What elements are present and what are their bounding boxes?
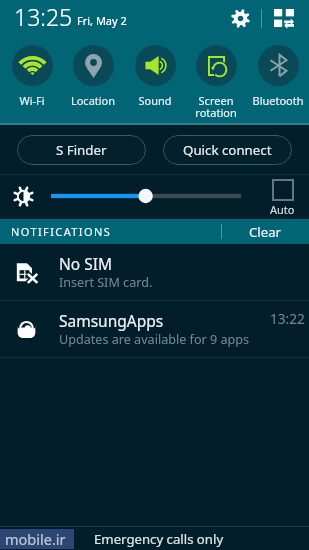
- button[interactable]: Quick connect: [163, 135, 292, 165]
- staticText: Wi-Fi: [2, 93, 62, 108]
- staticText: S Finder: [56, 141, 107, 159]
- staticText: No SIM: [59, 253, 113, 274]
- staticText: Quick connect: [183, 141, 272, 159]
- staticText: 13:22: [270, 309, 305, 328]
- staticText: Bluetooth: [248, 93, 308, 108]
- button[interactable]: Clear: [222, 219, 309, 244]
- staticText: Emergency calls only: [94, 530, 224, 548]
- staticText: Sound: [125, 93, 185, 108]
- staticText: Screen rotation: [186, 93, 246, 120]
- button[interactable]: Sound: [125, 45, 185, 108]
- button[interactable]: Brightness: [14, 187, 33, 206]
- staticText: Insert SIM card.: [59, 274, 153, 291]
- staticText: NOTIFICATIONS: [11, 224, 112, 239]
- staticText: Auto: [270, 202, 295, 217]
- staticText: Clear: [249, 223, 282, 241]
- button[interactable]: SamsungApps: [0, 301, 309, 357]
- button[interactable]: Location: [63, 45, 123, 108]
- staticText: Location: [63, 93, 123, 108]
- staticText: 13:25: [14, 1, 73, 32]
- staticText: mobile.ir: [5, 529, 66, 549]
- button[interactable]: Screen rotation: [186, 45, 246, 120]
- staticText: Fri, May 2: [77, 13, 127, 28]
- button[interactable]: Wi-Fi: [2, 45, 62, 108]
- staticText: Updates are available for 9 apps: [59, 331, 250, 348]
- button[interactable]: Bluetooth: [248, 45, 308, 108]
- button[interactable]: No SIM: [0, 244, 309, 300]
- button[interactable]: Settings: [226, 4, 254, 32]
- staticText: SamsungApps: [59, 310, 164, 331]
- button[interactable]: Auto: [270, 179, 295, 217]
- button[interactable]: [51, 187, 241, 205]
- button[interactable]: S Finder: [17, 135, 146, 165]
- button[interactable]: Edit quick settings: [271, 5, 297, 31]
